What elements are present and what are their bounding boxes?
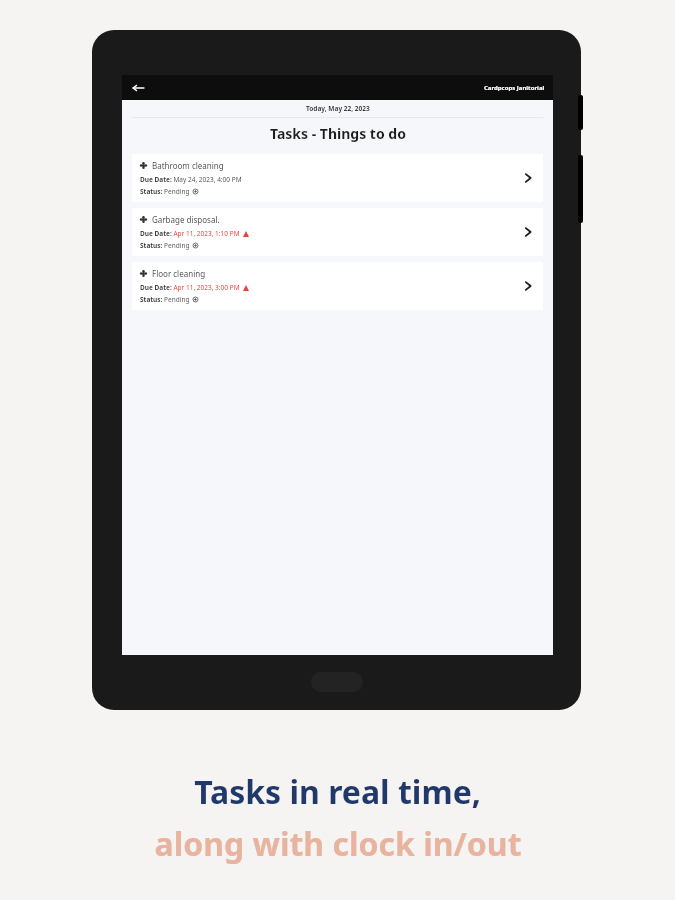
staticText: Status: Pending	[140, 187, 190, 196]
staticText: Bathroom cleaning	[152, 160, 224, 171]
button[interactable]: Garbage disposal.	[132, 208, 543, 256]
staticText: Cardpcops Janitorial	[484, 84, 545, 92]
button[interactable]: Bathroom cleaning	[132, 154, 543, 202]
staticText: Due Date: Apr 11, 2023, 3:00 PM	[140, 283, 240, 292]
staticText: Tasks - Things to do	[270, 124, 406, 143]
staticText: Due Date: Apr 11, 2023, 1:10 PM	[140, 229, 240, 238]
staticText: Status: Pending	[140, 295, 190, 304]
staticText: along with clock in/out	[154, 822, 522, 866]
staticText: Status: Pending	[140, 241, 190, 250]
button[interactable]: Back	[128, 78, 148, 98]
staticText: Today, May 22, 2023	[306, 104, 370, 113]
staticText: Due Date: May 24, 2023, 4:00 PM	[140, 175, 242, 184]
button[interactable]: Floor cleaning	[132, 262, 543, 310]
button[interactable]: Open task	[513, 217, 543, 247]
button[interactable]: Open task	[513, 163, 543, 193]
button[interactable]: Open task	[513, 271, 543, 301]
staticText: Tasks in real time,	[194, 770, 481, 814]
staticText: Floor cleaning	[152, 268, 206, 279]
staticText: Garbage disposal.	[152, 214, 220, 225]
